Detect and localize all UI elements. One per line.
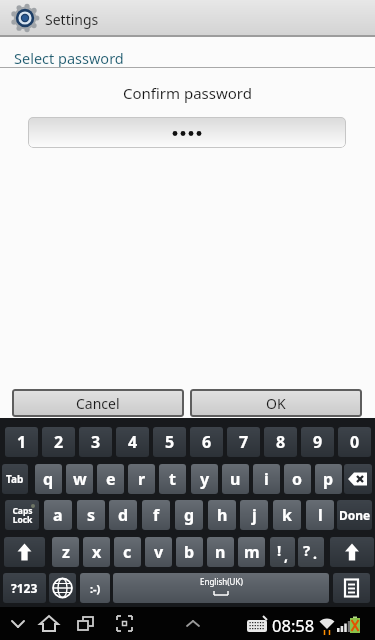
staticText: ? xyxy=(303,540,311,560)
staticText: g xyxy=(184,504,195,526)
staticText: v xyxy=(154,541,164,563)
button[interactable]: v xyxy=(145,537,172,567)
staticText: Tab xyxy=(6,472,24,486)
button[interactable]: OK xyxy=(190,389,362,417)
staticText: k xyxy=(282,504,292,526)
staticText: m xyxy=(244,541,260,563)
staticText: :-) xyxy=(90,581,101,596)
button[interactable] xyxy=(344,464,372,494)
button[interactable]: Caps Lock xyxy=(5,500,39,530)
staticText: ?123 xyxy=(11,580,38,596)
staticText: o xyxy=(292,468,303,490)
staticText: Settings xyxy=(45,10,99,29)
button[interactable]: 8 xyxy=(264,427,297,457)
button[interactable]: r xyxy=(128,464,155,494)
button[interactable]: s xyxy=(77,500,105,530)
staticText: 9 xyxy=(313,431,323,453)
button[interactable]: n xyxy=(207,537,234,567)
staticText: t xyxy=(169,468,176,490)
staticText: x xyxy=(92,541,102,563)
staticText: 6 xyxy=(202,431,212,453)
button[interactable] xyxy=(180,609,206,637)
button[interactable]: Tab xyxy=(2,464,28,494)
staticText: Caps Lock xyxy=(12,505,33,526)
button[interactable]: h xyxy=(208,500,236,530)
button[interactable]: w xyxy=(66,464,93,494)
staticText: 5 xyxy=(165,431,175,453)
staticText: h xyxy=(217,504,228,526)
button[interactable]: ! xyxy=(270,537,295,567)
button[interactable]: 4 xyxy=(116,427,149,457)
staticText: z xyxy=(62,541,70,563)
staticText: q xyxy=(43,468,54,490)
button[interactable] xyxy=(330,537,374,567)
staticText: Cancel xyxy=(76,394,120,413)
button[interactable] xyxy=(4,537,45,567)
button[interactable]: 0 xyxy=(338,427,371,457)
staticText: d xyxy=(118,504,129,526)
button[interactable]: ?123 xyxy=(3,573,46,603)
button[interactable] xyxy=(112,609,138,637)
button[interactable]: j xyxy=(240,500,268,530)
staticText: j xyxy=(252,504,257,526)
button[interactable]: :-) xyxy=(80,573,110,603)
staticText: y xyxy=(200,468,210,490)
staticText: r xyxy=(138,468,146,490)
button[interactable]: 1 xyxy=(5,427,38,457)
button[interactable]: g xyxy=(175,500,203,530)
button[interactable]: l xyxy=(306,500,334,530)
staticText: i xyxy=(264,468,269,490)
staticText: w xyxy=(73,468,87,490)
staticText: c xyxy=(123,541,132,563)
button[interactable] xyxy=(333,573,370,603)
button[interactable] xyxy=(36,609,62,637)
staticText: 4 xyxy=(128,431,138,453)
button[interactable]: 3 xyxy=(79,427,112,457)
button[interactable]: English(UK) xyxy=(113,573,329,603)
button[interactable]: Cancel xyxy=(12,389,184,417)
button[interactable] xyxy=(72,609,98,637)
button[interactable]: 7 xyxy=(227,427,260,457)
button[interactable]: y xyxy=(191,464,218,494)
button[interactable]: p xyxy=(315,464,342,494)
button[interactable]: b xyxy=(176,537,203,567)
button[interactable]: u xyxy=(222,464,249,494)
staticText: . xyxy=(313,544,317,563)
button[interactable]: 6 xyxy=(190,427,223,457)
button[interactable]: 9 xyxy=(301,427,334,457)
staticText: Confirm password xyxy=(123,83,252,103)
button[interactable]: o xyxy=(284,464,311,494)
staticText: 0 xyxy=(350,431,360,453)
button[interactable]: 5 xyxy=(153,427,186,457)
button[interactable]: a xyxy=(44,500,72,530)
staticText: 08:58 xyxy=(272,614,315,636)
button[interactable]: m xyxy=(238,537,265,567)
staticText: Done xyxy=(339,507,371,523)
button[interactable] xyxy=(49,573,76,603)
button[interactable]: ? xyxy=(298,537,324,567)
button[interactable]: x xyxy=(83,537,110,567)
staticText: l xyxy=(318,504,323,526)
button[interactable]: Done xyxy=(337,500,372,530)
button[interactable]: t xyxy=(159,464,186,494)
staticText: 1 xyxy=(17,431,27,453)
staticText: s xyxy=(87,504,96,526)
staticText: OK xyxy=(266,394,286,413)
button[interactable]: i xyxy=(253,464,280,494)
button[interactable]: q xyxy=(35,464,62,494)
staticText: English(UK) xyxy=(200,576,243,587)
staticText: a xyxy=(53,504,63,526)
button[interactable]: k xyxy=(273,500,301,530)
staticText: 8 xyxy=(276,431,286,453)
button[interactable] xyxy=(6,609,32,637)
button[interactable]: c xyxy=(114,537,141,567)
staticText: n xyxy=(215,541,226,563)
button[interactable]: z xyxy=(52,537,79,567)
button[interactable]: d xyxy=(109,500,137,530)
button[interactable]: f xyxy=(142,500,170,530)
button[interactable]: 2 xyxy=(42,427,75,457)
button[interactable]: e xyxy=(97,464,124,494)
staticText: f xyxy=(153,504,160,526)
button[interactable] xyxy=(28,117,346,148)
staticText: e xyxy=(106,468,116,490)
